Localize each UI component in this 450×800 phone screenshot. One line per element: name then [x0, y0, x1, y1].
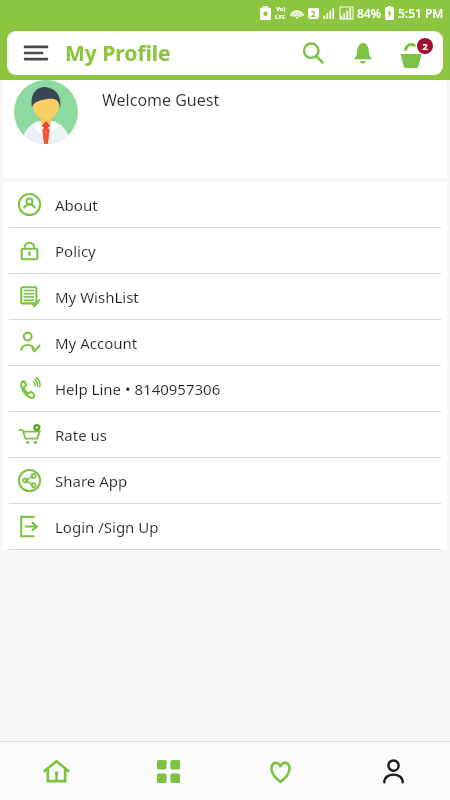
- staticText: Rate us: [55, 425, 107, 445]
- button[interactable]: Profile: [337, 742, 450, 800]
- button[interactable]: Notifications: [337, 31, 389, 75]
- staticText: Policy: [55, 241, 96, 261]
- button[interactable]: Search: [289, 31, 337, 75]
- button[interactable]: About: [3, 182, 447, 227]
- button[interactable]: Welcome Guest: [3, 80, 447, 178]
- button[interactable]: My WishList: [3, 274, 447, 319]
- staticText: My Account: [55, 333, 138, 353]
- button[interactable]: Cart: [389, 31, 443, 75]
- staticText: 2: [422, 40, 428, 52]
- button[interactable]: Help Line • 8140957306: [3, 366, 447, 411]
- button[interactable]: Wishlist: [224, 742, 337, 800]
- button[interactable]: Login /Sign Up: [3, 504, 447, 549]
- staticText: My Profile: [65, 39, 171, 68]
- button[interactable]: Home: [0, 742, 112, 800]
- button[interactable]: Share App: [3, 458, 447, 503]
- staticText: 5:51 PM: [398, 5, 444, 21]
- staticText: Welcome Guest: [102, 89, 220, 111]
- staticText: 2: [311, 8, 316, 19]
- staticText: Login /Sign Up: [55, 517, 159, 537]
- staticText: About: [55, 195, 98, 215]
- button[interactable]: Rate us: [3, 412, 447, 457]
- staticText: Help Line • 8140957306: [55, 379, 221, 399]
- button[interactable]: Policy: [3, 228, 447, 273]
- staticText: My WishList: [55, 287, 139, 307]
- button[interactable]: My Account: [3, 320, 447, 365]
- staticText: Share App: [55, 471, 128, 491]
- staticText: LTE: [275, 13, 286, 21]
- button[interactable]: Categories: [112, 742, 224, 800]
- staticText: Vo): [276, 5, 286, 13]
- staticText: 84%: [357, 5, 381, 21]
- button[interactable]: Menu: [7, 31, 65, 75]
